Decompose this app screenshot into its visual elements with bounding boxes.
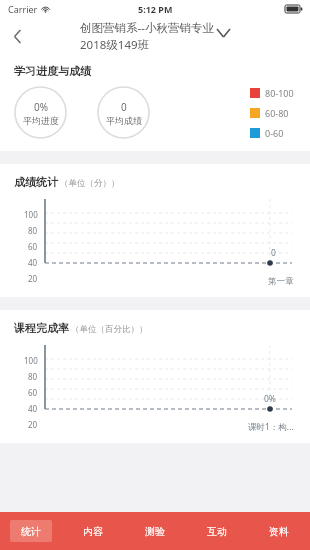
staticText: 平均成绩: [106, 115, 142, 126]
staticText: Carrier: [8, 3, 38, 15]
staticText: 0: [271, 247, 276, 259]
staticText: 40: [28, 403, 38, 414]
staticText: 内容: [83, 525, 103, 538]
staticText: 60-80: [265, 107, 289, 119]
staticText: 0%: [34, 100, 49, 114]
staticText: 40: [28, 257, 38, 268]
staticText: 80: [28, 371, 38, 382]
staticText: 80-100: [265, 87, 294, 99]
button[interactable]: 互动: [186, 512, 248, 550]
button[interactable]: Back: [0, 19, 34, 53]
staticText: 统计: [21, 525, 41, 538]
staticText: 5:12 PM: [138, 3, 173, 15]
staticText: 0%: [264, 393, 276, 405]
button[interactable]: 资料: [248, 512, 310, 550]
staticText: 资料: [269, 525, 289, 538]
staticText: 课时1：构...: [248, 421, 294, 433]
staticText: 互动: [207, 525, 227, 538]
staticText: 80: [28, 225, 38, 236]
staticText: 60: [28, 241, 38, 252]
staticText: 0: [121, 100, 127, 114]
staticText: 平均进度: [23, 115, 59, 126]
staticText: 60: [28, 387, 38, 398]
staticText: 第一章: [268, 276, 294, 287]
staticText: 成绩统计: [14, 175, 58, 189]
staticText: 20: [28, 419, 38, 430]
staticText: 课程完成率: [14, 321, 69, 335]
staticText: 2018级149班: [80, 37, 150, 53]
staticText: （单位（分））: [60, 178, 120, 189]
button[interactable]: 内容: [62, 512, 124, 550]
staticText: 创图营销系--小秋营销专业: [80, 20, 214, 36]
staticText: 测验: [145, 525, 165, 538]
button[interactable]: 创图营销系--小秋营销专业: [80, 20, 230, 53]
staticText: 100: [24, 209, 38, 220]
staticText: 20: [28, 273, 38, 284]
staticText: 0-60: [265, 127, 284, 139]
staticText: 100: [24, 355, 38, 366]
button[interactable]: 统计: [0, 512, 62, 550]
button[interactable]: 测验: [124, 512, 186, 550]
staticText: 学习进度与成绩: [14, 64, 91, 78]
staticText: （单位（百分比））: [71, 324, 148, 335]
